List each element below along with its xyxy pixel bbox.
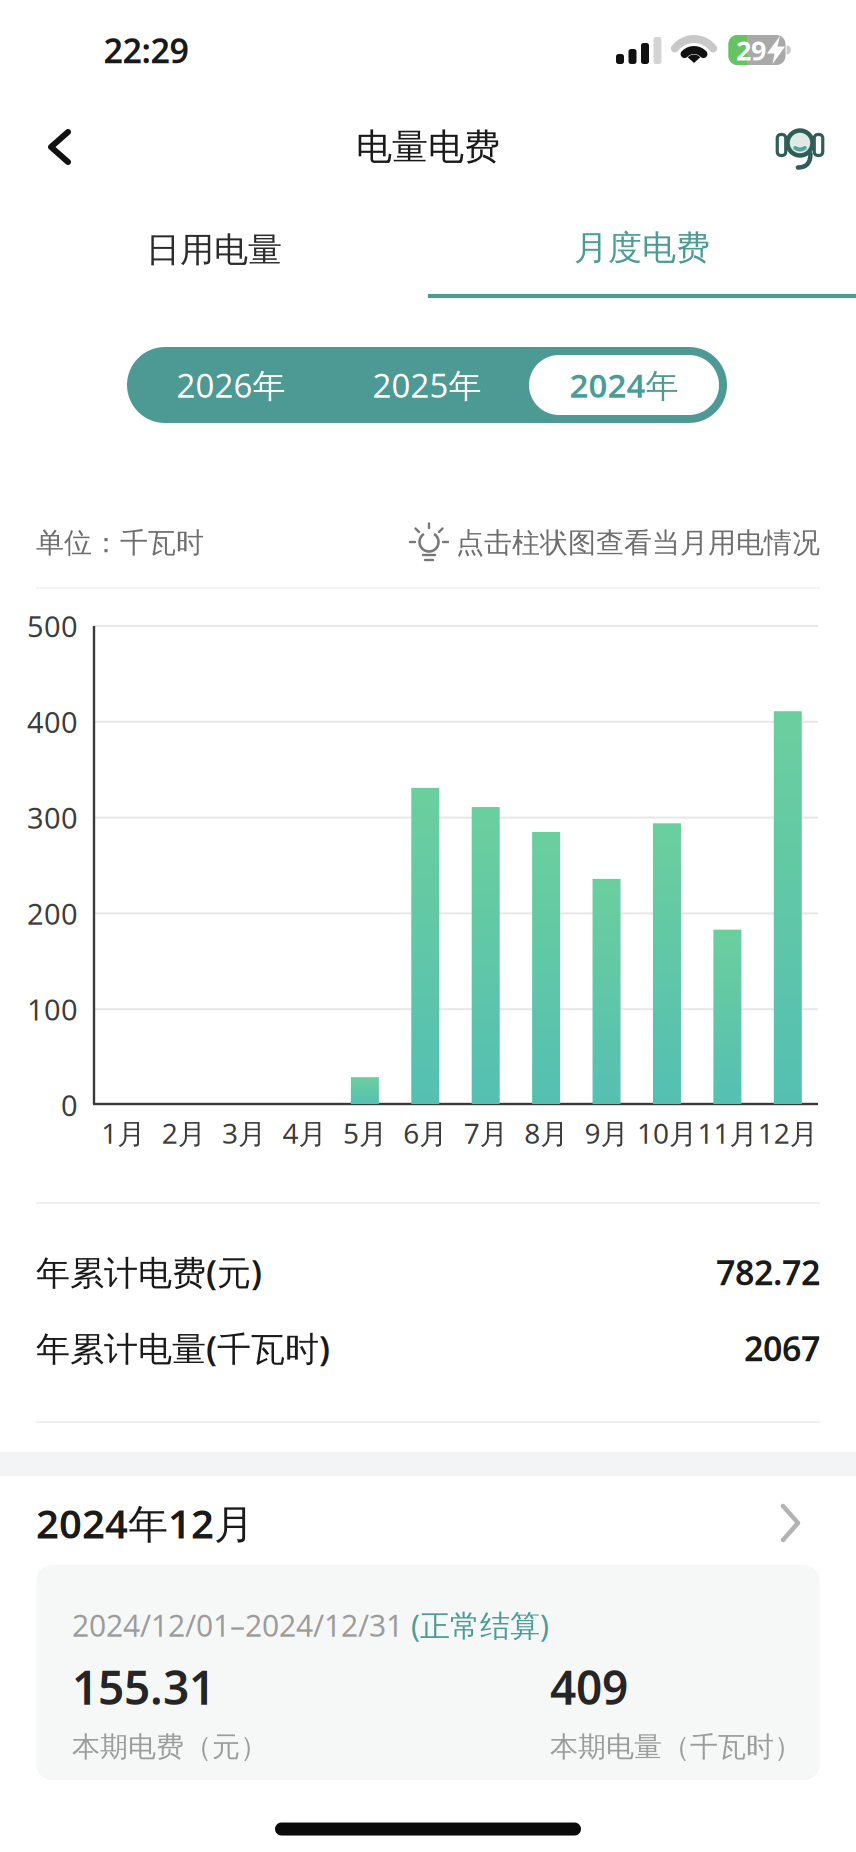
staticText: 200 — [27, 894, 78, 933]
staticText: 155.31 — [72, 1656, 215, 1718]
button[interactable] — [774, 711, 802, 1104]
staticText: 12月 — [758, 1114, 818, 1152]
staticText: 7月 — [464, 1114, 508, 1152]
button[interactable] — [411, 788, 439, 1104]
staticText: 782.72 — [716, 1249, 820, 1295]
button[interactable] — [713, 930, 741, 1104]
button[interactable] — [592, 879, 620, 1104]
staticText: 日用电量 — [146, 229, 282, 271]
staticText: 409 — [550, 1656, 628, 1718]
staticText: 电量电费 — [356, 125, 500, 169]
staticText: 100 — [27, 990, 78, 1028]
staticText: 2024/12/01–2024/12/31 — [72, 1605, 411, 1645]
staticText: 3月 — [222, 1114, 266, 1152]
staticText: 29 — [736, 32, 766, 68]
button[interactable] — [351, 1077, 379, 1104]
staticText: (正常结算) — [411, 1605, 549, 1645]
staticText: 2月 — [162, 1114, 206, 1152]
staticText: 2026年 — [176, 363, 285, 407]
staticText: 2067 — [744, 1325, 820, 1371]
button[interactable] — [532, 832, 560, 1104]
button[interactable] — [770, 116, 830, 176]
staticText: 4月 — [282, 1114, 326, 1152]
button[interactable] — [653, 823, 681, 1104]
staticText: 年累计电量(千瓦时) — [36, 1325, 330, 1371]
button[interactable] — [47, 130, 73, 164]
button[interactable]: 2026年 — [141, 347, 321, 423]
staticText: 2025年 — [372, 363, 481, 407]
staticText: 年累计电费(元) — [36, 1249, 262, 1295]
button[interactable]: 2024年12月 — [0, 1478, 856, 1568]
staticText: 单位：千瓦时 — [36, 526, 204, 560]
staticText: 6月 — [403, 1114, 447, 1152]
staticText: 0 — [61, 1086, 78, 1124]
staticText: 300 — [27, 798, 78, 837]
button[interactable] — [472, 807, 500, 1104]
staticText: 8月 — [524, 1114, 568, 1152]
staticText: 点击柱状图查看当月用电情况 — [456, 526, 820, 560]
button[interactable]: 2025年 — [337, 347, 517, 423]
button[interactable]: 2024/12/01–2024/12/31 — [36, 1565, 820, 1780]
staticText: 22:29 — [103, 27, 188, 73]
button[interactable]: 月度电费 — [428, 208, 856, 288]
button[interactable]: 2024年 — [529, 355, 719, 415]
staticText: 10月 — [637, 1114, 697, 1152]
staticText: 400 — [27, 702, 78, 741]
staticText: 本期电费（元） — [72, 1730, 268, 1764]
staticText: 本期电量（千瓦时） — [550, 1730, 802, 1764]
staticText: 1月 — [101, 1114, 145, 1152]
staticText: 2024年 — [569, 363, 678, 407]
staticText: 9月 — [584, 1114, 628, 1152]
staticText: 5月 — [343, 1114, 387, 1152]
staticText: 2024年12月 — [36, 1496, 254, 1549]
staticText: 11月 — [697, 1114, 757, 1152]
staticText: 500 — [27, 607, 78, 645]
staticText: 月度电费 — [574, 227, 710, 269]
button[interactable]: 日用电量 — [0, 210, 428, 290]
